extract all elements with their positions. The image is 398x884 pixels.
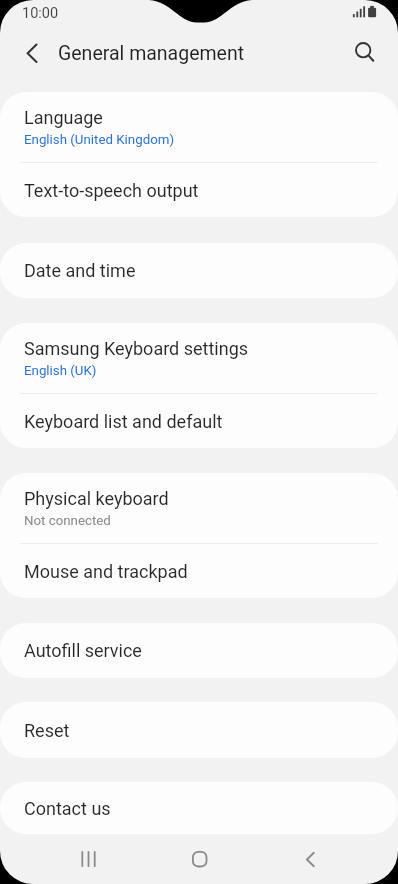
button[interactable]: Samsung Keyboard settings [0,323,398,393]
staticText: English (United Kingdom) [24,132,175,148]
staticText: Mouse and trackpad [24,561,188,582]
button[interactable]: Mouse and trackpad [0,544,398,598]
staticText: Keyboard list and default [24,411,223,432]
staticText: Autofill service [24,640,142,661]
button[interactable] [356,43,376,63]
staticText: Contact us [24,798,111,819]
button[interactable]: Autofill service [0,623,398,678]
staticText: Language [24,107,103,128]
staticText: Text-to-speech output [24,180,199,201]
staticText: English (UK) [24,363,97,379]
button[interactable]: Reset [0,702,398,758]
button[interactable] [20,43,40,63]
button[interactable]: Date and time [0,243,398,298]
staticText: Not connected [24,513,111,529]
staticText: Physical keyboard [24,488,169,509]
staticText: 10:00 [22,5,59,22]
button[interactable]: Physical keyboard [0,473,398,543]
button[interactable] [185,845,213,873]
staticText: General management [58,42,245,65]
button[interactable]: Contact us [0,782,398,834]
staticText: Reset [24,720,70,741]
button[interactable]: Text-to-speech output [0,163,398,217]
staticText: Date and time [24,260,136,281]
staticText: Samsung Keyboard settings [24,338,249,359]
button[interactable]: Keyboard list and default [0,394,398,448]
button[interactable] [296,845,324,873]
button[interactable]: Language [0,92,398,162]
button[interactable] [74,845,102,873]
